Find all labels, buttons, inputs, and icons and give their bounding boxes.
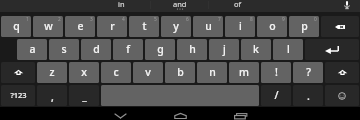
staticText: _ (82, 89, 87, 103)
button[interactable]: t (129, 16, 159, 37)
staticText: b (177, 65, 184, 79)
staticText: i (239, 19, 242, 33)
staticText: of (234, 0, 242, 9)
staticText: z (49, 65, 55, 79)
staticText: k (253, 42, 259, 56)
staticText: and (173, 0, 187, 9)
button[interactable]: z (37, 62, 67, 83)
staticText: q (13, 19, 20, 33)
staticText: s (61, 42, 67, 56)
staticText: / (274, 88, 279, 102)
button[interactable]: m (229, 62, 259, 83)
button[interactable]: ! (261, 62, 291, 83)
staticText: 2 (58, 16, 61, 23)
staticText: n (209, 65, 216, 79)
staticText: u (205, 19, 212, 33)
staticText: v (145, 65, 151, 79)
button[interactable]: y (161, 16, 191, 37)
button[interactable]: b (165, 62, 195, 83)
button[interactable]: s (49, 39, 79, 60)
button[interactable]: p (289, 16, 319, 37)
button[interactable]: d (81, 39, 111, 60)
button[interactable]: c (101, 62, 131, 83)
button[interactable]: and (151, 0, 208, 12)
staticText: c (113, 65, 119, 79)
button[interactable]: Home (148, 107, 212, 120)
button[interactable]: q (1, 16, 31, 37)
button[interactable]: v (133, 62, 163, 83)
staticText: ? (306, 65, 311, 79)
button[interactable]: j (209, 39, 239, 60)
button[interactable] (325, 62, 359, 83)
button[interactable]: h (177, 39, 207, 60)
staticText: t (142, 19, 147, 33)
staticText: 7 (218, 16, 221, 23)
button[interactable]: k (241, 39, 271, 60)
staticText: g (157, 42, 164, 56)
staticText: ?123 (10, 90, 27, 100)
staticText: w (44, 19, 53, 33)
staticText: 8 (250, 16, 253, 23)
staticText: . (307, 89, 310, 103)
button[interactable]: u (193, 16, 223, 37)
staticText: f (126, 42, 130, 56)
staticText: 3 (90, 16, 93, 23)
button[interactable] (321, 16, 359, 37)
staticText: 6 (186, 16, 189, 23)
staticText: ! (275, 65, 278, 79)
button[interactable]: w (33, 16, 63, 37)
button[interactable] (325, 85, 359, 106)
button[interactable]: in (92, 0, 150, 12)
button[interactable]: , (37, 85, 67, 106)
staticText: e (77, 19, 84, 33)
button[interactable]: n (197, 62, 227, 83)
staticText: in (118, 0, 125, 9)
button[interactable]: f (113, 39, 143, 60)
button[interactable]: Recents (208, 107, 272, 120)
button[interactable]: a (17, 39, 47, 60)
button[interactable]: ? (293, 62, 323, 83)
staticText: m (239, 65, 249, 79)
button[interactable]: o (257, 16, 287, 37)
staticText: 1 (26, 16, 29, 23)
button[interactable]: l (273, 39, 303, 60)
button[interactable]: i (225, 16, 255, 37)
button[interactable]: g (145, 39, 175, 60)
button[interactable]: e (65, 16, 95, 37)
button[interactable]: r (97, 16, 127, 37)
staticText: , (51, 90, 54, 104)
staticText: x (81, 65, 87, 79)
staticText: o (269, 19, 276, 33)
staticText: y (173, 19, 179, 33)
button[interactable]: . (293, 85, 323, 106)
button[interactable]: ?123 (1, 85, 35, 106)
button[interactable]: _ (69, 85, 99, 106)
staticText: 9 (282, 16, 285, 23)
staticText: j (223, 42, 226, 56)
staticText: 5 (154, 16, 157, 23)
button[interactable]: Voice input (334, 0, 360, 12)
staticText: d (93, 42, 100, 56)
staticText: 0 (314, 16, 317, 23)
staticText: a (29, 42, 36, 56)
button[interactable] (1, 62, 35, 83)
staticText: h (189, 42, 196, 56)
staticText: l (287, 42, 290, 56)
button[interactable]: Back (88, 107, 152, 120)
button[interactable]: of (209, 0, 266, 12)
staticText: 4 (122, 16, 125, 23)
staticText: p (301, 19, 308, 33)
staticText: r (110, 19, 115, 33)
button[interactable]: / (261, 85, 291, 106)
button[interactable] (305, 39, 359, 60)
button[interactable]: x (69, 62, 99, 83)
